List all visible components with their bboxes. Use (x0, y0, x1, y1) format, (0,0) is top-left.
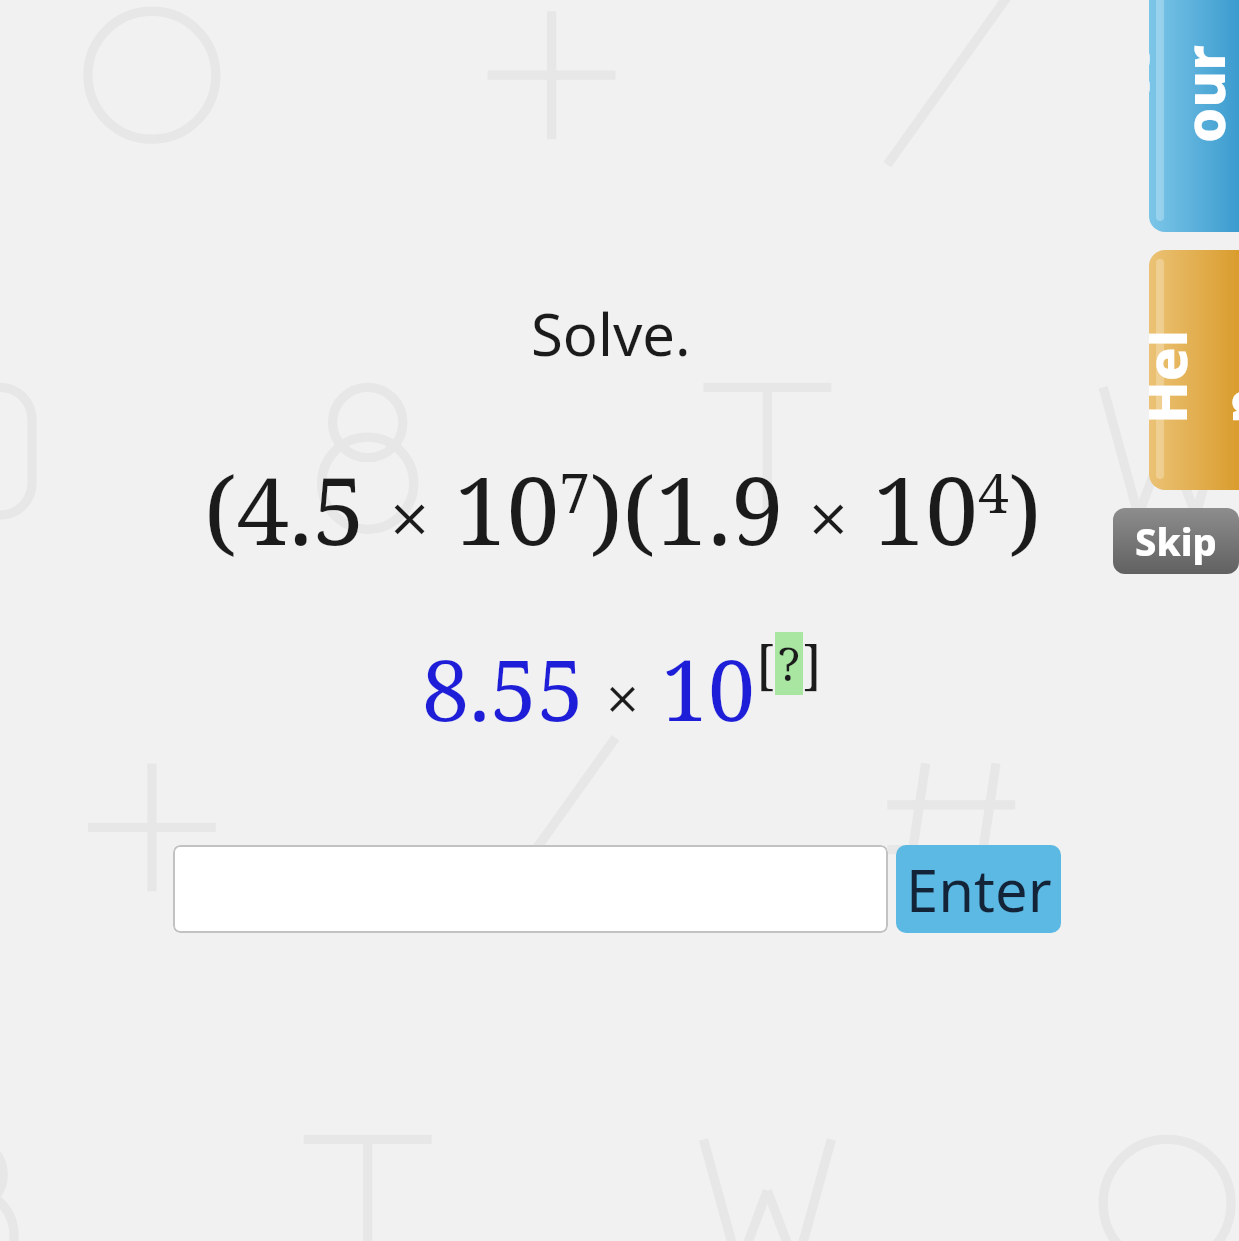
staticText: Skip (1135, 515, 1217, 567)
button[interactable]: Enter (896, 845, 1061, 933)
staticText: Solve. (531, 294, 691, 373)
button[interactable]: Resources (1149, 0, 1239, 232)
staticText: (4.5 × 107)(1.9 × 104) (204, 445, 1042, 573)
button[interactable]: Answer input (173, 845, 888, 933)
staticText: 8.55 × 10 (422, 631, 756, 745)
staticText: [ (756, 628, 775, 699)
staticText: ] (803, 628, 822, 699)
staticText: Resources (1149, 35, 1239, 143)
staticText: ? (778, 632, 800, 695)
button[interactable]: Help (1149, 250, 1239, 490)
staticText: Help (1149, 316, 1239, 424)
button[interactable]: Skip (1113, 508, 1239, 574)
button[interactable]: Unknown exponent (756, 628, 822, 699)
staticText: Enter (906, 850, 1052, 929)
